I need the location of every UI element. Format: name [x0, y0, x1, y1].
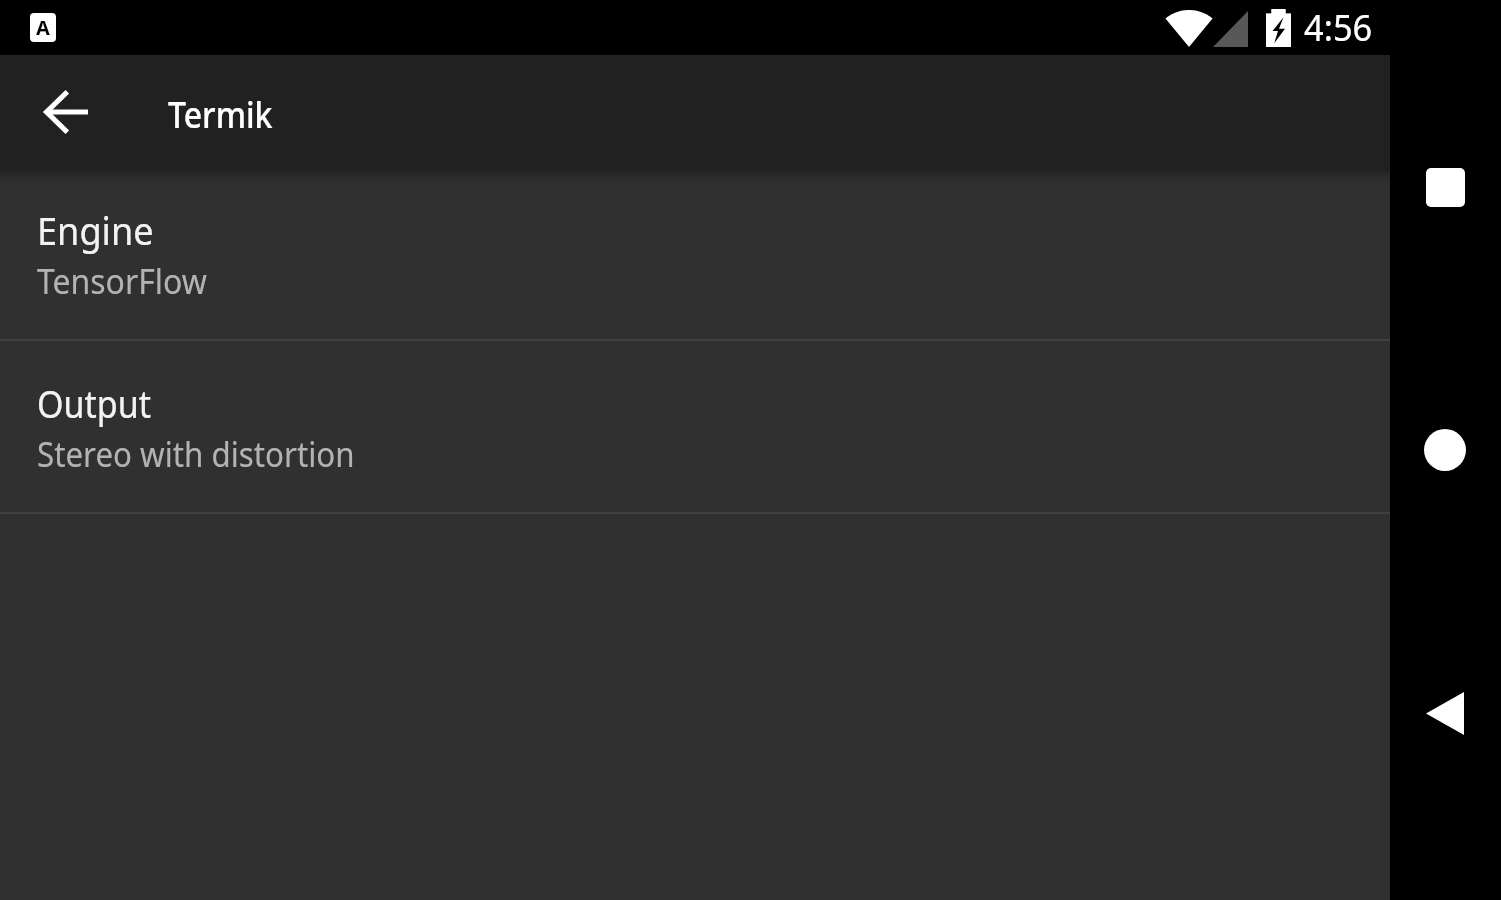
button[interactable]: Home [1401, 406, 1489, 494]
staticText: 4:56 [1304, 1, 1373, 51]
button[interactable]: Engine [0, 168, 1390, 339]
staticText: Engine [37, 204, 154, 256]
button[interactable]: Back [1401, 669, 1489, 757]
button[interactable]: Navigate up [22, 68, 110, 156]
staticText: Termik [168, 88, 273, 138]
staticText: Output [37, 377, 151, 429]
staticText: A [36, 14, 50, 41]
staticText: Stereo with distortion [37, 431, 355, 477]
button[interactable]: Output [0, 341, 1390, 512]
button[interactable]: Recent apps [1401, 143, 1489, 231]
staticText: TensorFlow [37, 258, 207, 304]
